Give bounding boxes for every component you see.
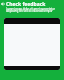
staticText: Check feedback — [6, 1, 46, 8]
button[interactable] — [4, 66, 60, 70]
button[interactable]: Back — [0, 0, 6, 7]
staticText: Lorem ipsum dolor sit amet consectetur a… — [6, 7, 61, 13]
